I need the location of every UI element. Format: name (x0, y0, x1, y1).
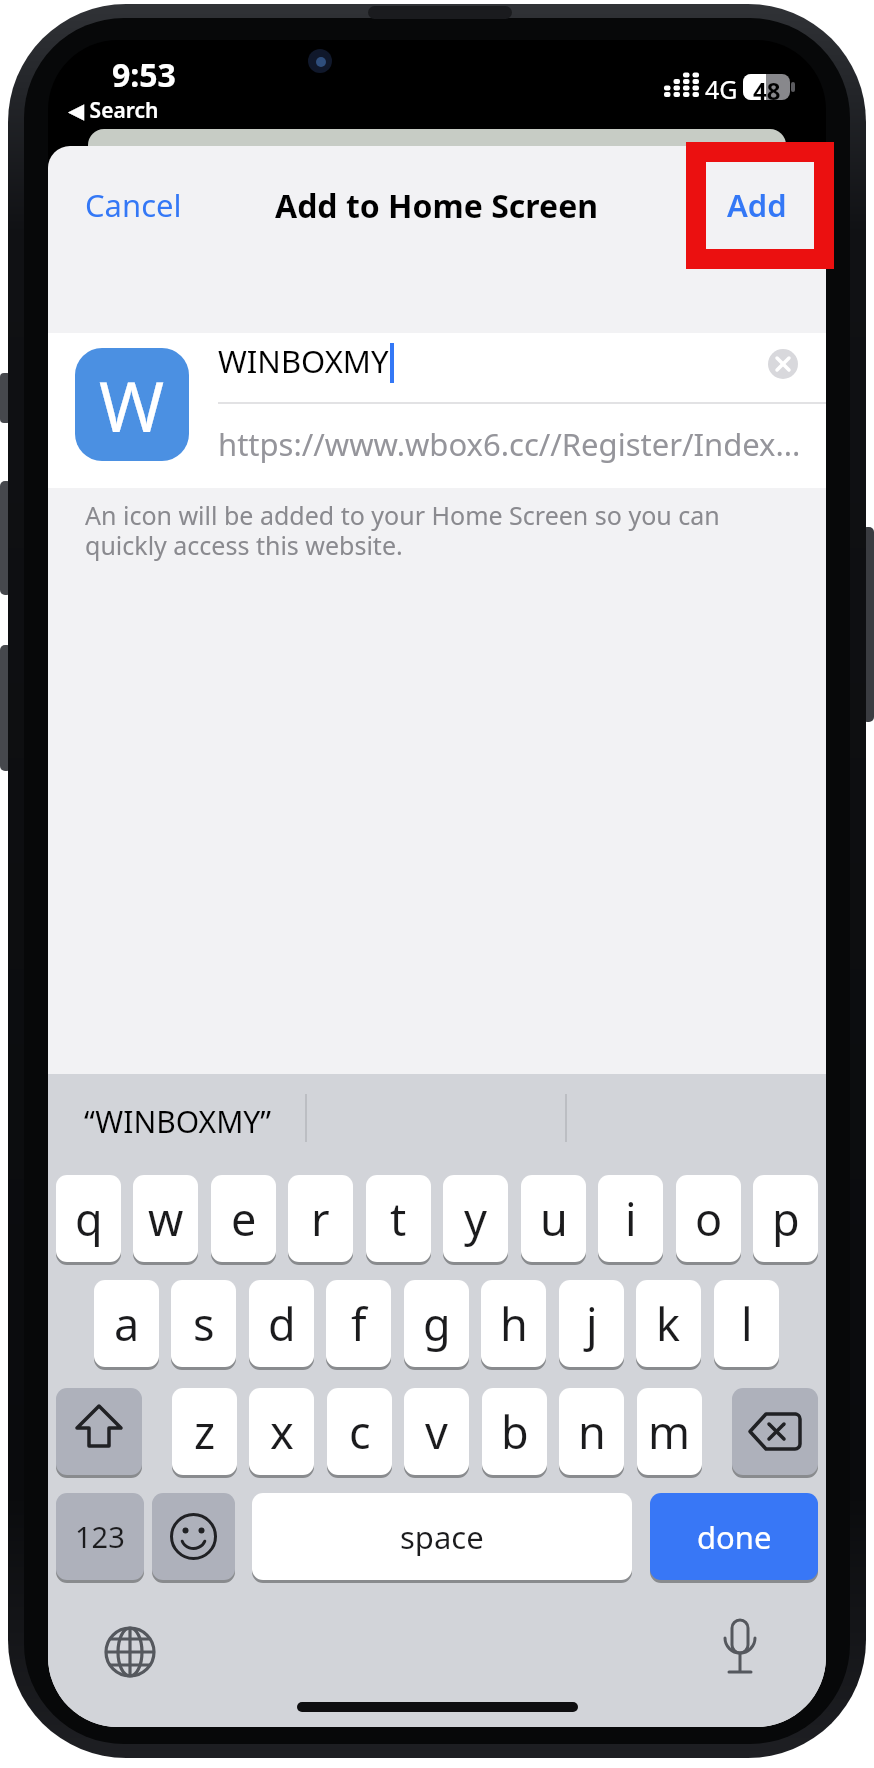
button[interactable]: space (252, 1493, 632, 1580)
staticText: t (390, 1188, 407, 1249)
button[interactable]: p (753, 1175, 818, 1262)
button[interactable]: j (559, 1280, 624, 1367)
button[interactable]: o (676, 1175, 741, 1262)
button[interactable]: s (171, 1280, 236, 1367)
button[interactable]: z (172, 1388, 237, 1475)
staticText: Add to Home Screen (275, 184, 599, 224)
staticText: m (648, 1401, 691, 1462)
staticText: r (311, 1188, 330, 1249)
button[interactable]: k (636, 1280, 701, 1367)
button[interactable]: 123 (56, 1493, 144, 1580)
button[interactable]: r (288, 1175, 353, 1262)
staticText: done (697, 1516, 772, 1558)
button[interactable]: l (714, 1280, 779, 1367)
staticText: n (578, 1401, 606, 1462)
button[interactable]: e (211, 1175, 276, 1262)
button[interactable]: Add (727, 184, 787, 226)
button[interactable] (152, 1493, 235, 1580)
button[interactable]: q (56, 1175, 121, 1262)
button[interactable]: Cancel (85, 184, 182, 226)
button[interactable]: g (404, 1280, 469, 1367)
button[interactable]: done (650, 1493, 818, 1580)
staticText: u (540, 1188, 568, 1249)
button[interactable]: w (133, 1175, 198, 1262)
staticText: “WINBOXMY” (84, 1101, 272, 1142)
staticText: h (500, 1293, 528, 1354)
staticText: f (351, 1293, 367, 1354)
staticText: Cancel (85, 184, 182, 226)
staticText: e (231, 1188, 257, 1249)
button[interactable]: t (366, 1175, 431, 1262)
staticText: w (148, 1188, 184, 1249)
button[interactable]: h (481, 1280, 546, 1367)
staticText: https://www.wbox6.cc//Register/Index... (218, 423, 801, 465)
button[interactable]: c (327, 1388, 392, 1475)
button[interactable]: u (521, 1175, 586, 1262)
button[interactable]: n (559, 1388, 624, 1475)
button[interactable] (710, 1618, 770, 1678)
button[interactable]: f (326, 1280, 391, 1367)
button[interactable]: “WINBOXMY” (48, 1098, 308, 1144)
button[interactable] (732, 1388, 818, 1475)
staticText: k (656, 1293, 681, 1354)
button[interactable] (56, 1388, 142, 1475)
staticText: 48 (753, 74, 781, 100)
button[interactable]: a (94, 1280, 159, 1367)
staticText: 4G (705, 72, 738, 106)
staticText: An icon will be added to your Home Scree… (85, 498, 720, 562)
staticText: j (586, 1293, 598, 1354)
button[interactable] (686, 142, 834, 269)
staticText: p (772, 1188, 800, 1249)
button[interactable]: v (404, 1388, 469, 1475)
staticText: a (114, 1293, 140, 1354)
staticText: i (625, 1188, 637, 1249)
button[interactable] (768, 349, 798, 379)
button[interactable]: b (482, 1388, 547, 1475)
staticText: y (464, 1188, 487, 1249)
staticText: c (349, 1401, 371, 1462)
staticText: W (99, 357, 165, 452)
button[interactable]: m (637, 1388, 702, 1475)
staticText: l (741, 1293, 753, 1354)
staticText: 123 (75, 1517, 125, 1556)
staticText: o (695, 1188, 723, 1249)
staticText: x (270, 1401, 294, 1462)
staticText: v (425, 1401, 448, 1462)
staticText: d (268, 1293, 296, 1354)
staticText: Add (727, 184, 787, 226)
staticText: g (423, 1293, 451, 1354)
button[interactable] (100, 1622, 160, 1682)
staticText: 9:53 (112, 53, 176, 97)
staticText: s (193, 1293, 215, 1354)
button[interactable]: y (443, 1175, 508, 1262)
button[interactable]: d (249, 1280, 314, 1367)
button[interactable]: i (598, 1175, 663, 1262)
staticText: b (501, 1401, 529, 1462)
button[interactable]: x (249, 1388, 314, 1475)
staticText: space (400, 1516, 484, 1558)
staticText: q (75, 1188, 103, 1249)
staticText: z (194, 1401, 216, 1462)
staticText: WINBOXMY (218, 340, 389, 382)
staticText: ◀ Search (68, 96, 159, 125)
